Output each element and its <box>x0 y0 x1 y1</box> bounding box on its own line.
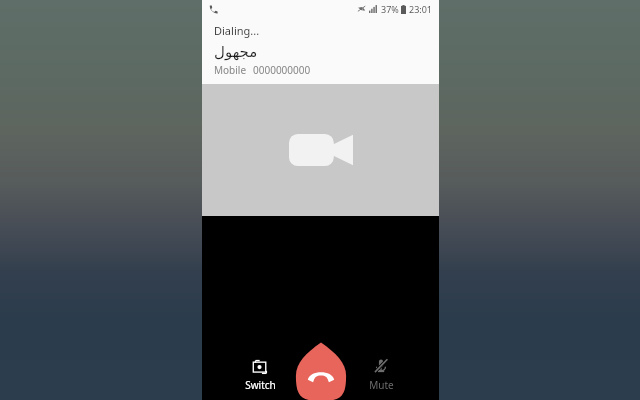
button[interactable]: End call <box>294 340 348 398</box>
button[interactable]: Mute <box>353 358 409 392</box>
staticText: 37% <box>381 3 399 15</box>
staticText: Dialing... <box>214 23 260 38</box>
staticText: Mute <box>369 378 394 392</box>
staticText: 23:01 <box>409 3 433 15</box>
staticText: 0000000000 <box>253 63 311 77</box>
staticText: مجهول <box>214 43 258 60</box>
button[interactable]: Switch <box>232 358 288 392</box>
staticText: Switch <box>245 378 276 392</box>
staticText: Mobile <box>214 63 247 77</box>
